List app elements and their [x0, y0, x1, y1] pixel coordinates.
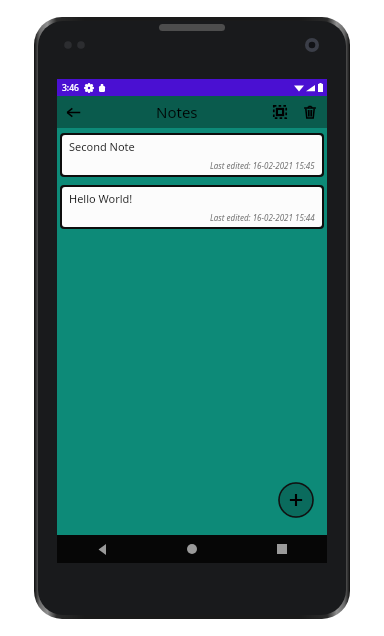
button[interactable]: Delete — [295, 97, 325, 127]
staticText: Second Note — [69, 139, 135, 154]
button[interactable]: Hello World! — [62, 187, 322, 227]
staticText: Last edited: 16-02-2021 15:45 — [210, 160, 315, 171]
button[interactable]: Second Note — [62, 135, 322, 175]
button[interactable]: Back — [57, 535, 147, 563]
button[interactable]: Home — [147, 535, 237, 563]
staticText: Hello World! — [69, 191, 133, 206]
button[interactable]: Add note — [278, 482, 314, 518]
button[interactable]: Back — [57, 96, 89, 128]
staticText: Last edited: 16-02-2021 15:44 — [210, 212, 315, 223]
staticText: Notes — [156, 102, 198, 122]
button[interactable]: Select all — [265, 97, 295, 127]
staticText: 3:46 — [62, 82, 79, 94]
button[interactable]: Recents — [237, 535, 327, 563]
